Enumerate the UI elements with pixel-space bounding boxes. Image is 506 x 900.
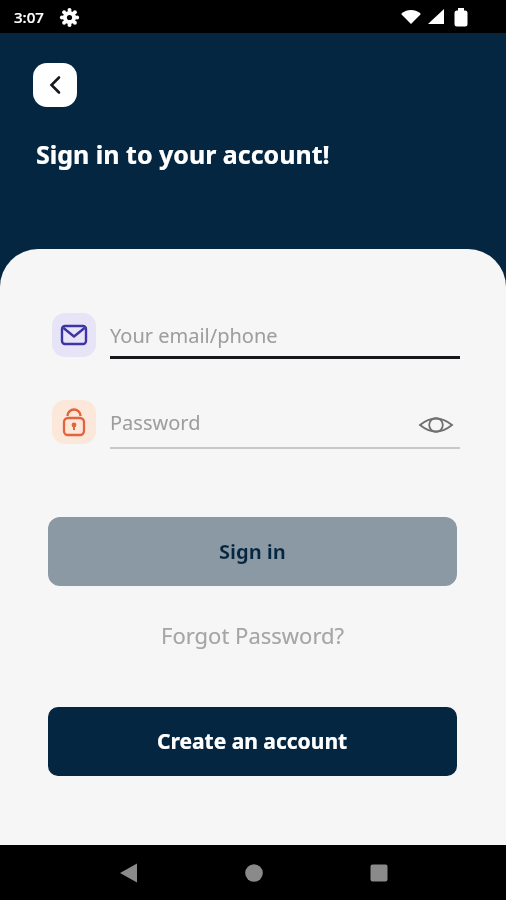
staticText: Sign in to your account! — [36, 137, 330, 171]
staticText: Forgot Password? — [161, 620, 345, 650]
staticText: 3:07 — [14, 7, 44, 27]
button[interactable]: Forgot Password? — [0, 611, 506, 659]
button[interactable] — [416, 409, 456, 449]
button[interactable]: Create an account — [48, 707, 457, 776]
button[interactable] — [33, 63, 77, 107]
staticText: Sign in — [219, 538, 286, 565]
staticText: Create an account — [157, 727, 348, 756]
button[interactable]: Your email/phone — [52, 313, 506, 357]
button[interactable] — [351, 845, 406, 900]
button[interactable]: Password — [52, 400, 506, 444]
staticText: Password — [110, 409, 201, 436]
button[interactable] — [101, 845, 156, 900]
button[interactable]: Sign in — [48, 517, 457, 586]
staticText: Your email/phone — [110, 322, 278, 349]
button[interactable] — [226, 845, 281, 900]
